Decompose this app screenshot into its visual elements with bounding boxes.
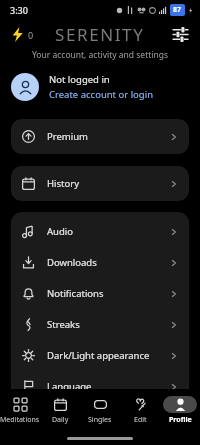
staticText: Help (47, 411, 68, 424)
staticText: Your account, activity and settings (0, 49, 200, 61)
button[interactable]: Dark/Light appearance (11, 340, 189, 371)
staticText: 0 (28, 29, 34, 41)
staticText: Edit (134, 415, 147, 425)
staticText: Meditations (0, 415, 40, 425)
button[interactable]: Premium (11, 119, 189, 154)
button[interactable]: Help (11, 402, 189, 433)
button[interactable]: Edit (120, 389, 160, 431)
staticText: Streaks (47, 318, 80, 331)
button[interactable]: Singles (80, 389, 120, 431)
button[interactable]: Streaks (11, 309, 189, 340)
staticText: History (47, 177, 79, 190)
button[interactable]: Settings (168, 22, 192, 46)
staticText: Profile (169, 415, 192, 425)
button[interactable]: Language (11, 371, 189, 402)
button[interactable]: Not logged in (0, 67, 200, 107)
button[interactable]: Notifications (11, 278, 189, 309)
staticText: Audio (47, 225, 73, 238)
button[interactable]: Meditations (0, 389, 40, 431)
staticText: 87 (173, 5, 182, 15)
staticText: 3:30 (10, 4, 28, 16)
button[interactable]: History (11, 166, 189, 201)
staticText: Not logged in (49, 73, 110, 86)
button[interactable]: Profile (160, 389, 200, 431)
staticText: Daily (52, 415, 69, 425)
button[interactable]: Audio (11, 216, 189, 247)
staticText: Singles (88, 415, 112, 425)
button[interactable]: Downloads (11, 247, 189, 278)
staticText: Premium (47, 130, 88, 143)
button[interactable]: Daily (40, 389, 80, 431)
staticText: Create account or login (49, 88, 154, 101)
staticText: Notifications (47, 287, 104, 300)
staticText: SERENITY (55, 23, 145, 46)
staticText: Downloads (47, 256, 97, 269)
staticText: Language (47, 380, 92, 393)
staticText: Dark/Light appearance (47, 349, 150, 362)
